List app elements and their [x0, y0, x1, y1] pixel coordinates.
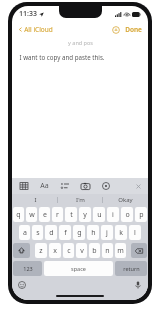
staticText: g — [77, 228, 82, 238]
staticText: m — [117, 246, 124, 256]
button[interactable]: I — [12, 194, 58, 206]
button[interactable]: space — [44, 261, 113, 276]
staticText: c — [67, 246, 71, 256]
staticText: j — [106, 228, 108, 238]
staticText: I'm — [76, 196, 85, 204]
button[interactable]: z — [35, 243, 47, 258]
button[interactable]: f — [59, 225, 71, 240]
staticText: r — [56, 210, 59, 220]
staticText: e — [43, 210, 47, 220]
staticText: h — [91, 228, 96, 238]
button[interactable]: c — [63, 243, 74, 258]
button[interactable]: Compose — [111, 25, 121, 35]
staticText: 11:33 — [19, 9, 37, 19]
staticText: k — [119, 228, 123, 238]
staticText: p — [139, 210, 144, 220]
staticText: I — [34, 196, 37, 204]
staticText: All iCloud — [24, 25, 53, 34]
button[interactable]: b — [89, 243, 100, 258]
button[interactable]: Delete — [131, 243, 147, 258]
staticText: Done — [125, 25, 142, 34]
button[interactable]: l — [129, 225, 141, 240]
staticText: l — [134, 228, 136, 238]
button[interactable]: 123 — [13, 261, 42, 276]
button[interactable]: i — [107, 207, 119, 222]
button[interactable]: Markup — [102, 182, 110, 190]
button[interactable]: g — [73, 225, 85, 240]
staticText: z — [39, 246, 43, 256]
staticText: d — [49, 228, 54, 238]
staticText: w — [29, 210, 35, 220]
staticText: a — [23, 228, 27, 238]
button[interactable]: Checklist — [61, 182, 69, 190]
staticText: q — [16, 210, 21, 220]
button[interactable]: Okay — [103, 194, 148, 206]
staticText: o — [125, 210, 130, 220]
staticText: t — [70, 210, 73, 220]
button[interactable]: return — [115, 261, 147, 276]
button[interactable]: d — [45, 225, 57, 240]
button[interactable]: Table — [20, 182, 28, 190]
staticText: space — [71, 265, 86, 272]
staticText: I want to copy and paste this. — [19, 53, 105, 61]
staticText: 123 — [23, 265, 33, 272]
button[interactable]: Emoji — [18, 281, 26, 289]
button[interactable]: s — [32, 225, 43, 240]
button[interactable]: Aa — [40, 181, 49, 191]
button[interactable]: n — [102, 243, 113, 258]
button[interactable]: u — [93, 207, 105, 222]
button[interactable]: h — [87, 225, 99, 240]
button[interactable]: Camera — [81, 182, 90, 191]
button[interactable]: Done — [124, 23, 143, 36]
button[interactable]: e — [39, 207, 50, 222]
button[interactable]: k — [115, 225, 127, 240]
button[interactable]: o — [121, 207, 133, 222]
staticText: y and pos — [68, 39, 93, 46]
staticText: return — [123, 265, 140, 272]
staticText: b — [92, 246, 97, 256]
staticText: s — [36, 228, 40, 238]
staticText: i — [112, 210, 114, 220]
staticText: v — [80, 246, 84, 256]
button[interactable]: a — [19, 225, 30, 240]
staticText: Aa — [40, 181, 49, 191]
button[interactable]: x — [49, 243, 61, 258]
staticText: f — [64, 228, 67, 238]
button[interactable]: j — [101, 225, 113, 240]
staticText: u — [97, 210, 102, 220]
button[interactable]: p — [135, 207, 147, 222]
button[interactable]: m — [115, 243, 126, 258]
button[interactable]: All iCloud — [17, 23, 54, 36]
staticText: Okay — [118, 196, 133, 204]
staticText: x — [53, 246, 57, 256]
button[interactable]: Dictation — [135, 281, 141, 289]
button[interactable]: Close keyboard — [135, 183, 142, 190]
button[interactable]: q — [13, 207, 24, 222]
staticText: n — [105, 246, 110, 256]
staticText: y — [83, 210, 87, 220]
button[interactable]: v — [76, 243, 87, 258]
button[interactable]: w — [26, 207, 37, 222]
button[interactable]: y — [79, 207, 91, 222]
button[interactable]: Shift — [13, 243, 30, 258]
button[interactable]: I'm — [58, 194, 103, 206]
button[interactable]: r — [52, 207, 63, 222]
button[interactable]: t — [65, 207, 77, 222]
